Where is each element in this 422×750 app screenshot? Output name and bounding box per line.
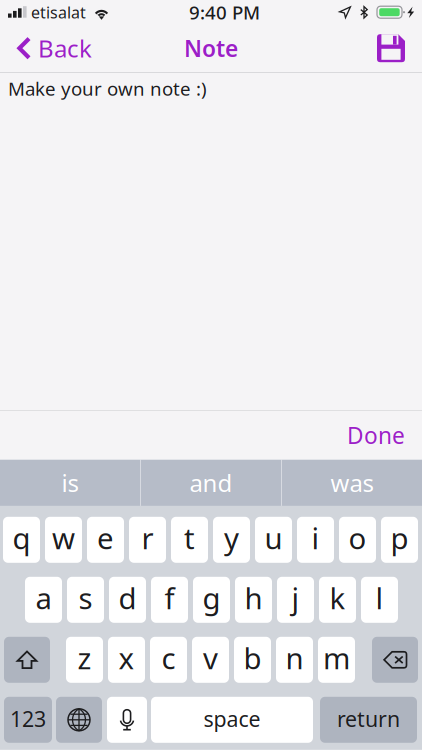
staticText: is [61, 467, 78, 499]
staticText: k [329, 578, 345, 617]
button[interactable]: u [255, 517, 292, 563]
button[interactable]: 123 [4, 697, 52, 743]
button[interactable]: m [318, 637, 355, 683]
staticText: y [224, 518, 239, 557]
staticText: m [323, 638, 350, 677]
button[interactable]: b [234, 637, 271, 683]
staticText: v [203, 638, 218, 677]
staticText: s [78, 578, 92, 617]
button[interactable]: g [193, 577, 230, 623]
staticText: g [202, 578, 220, 617]
button[interactable]: l [361, 577, 398, 623]
button[interactable]: Shift [4, 637, 50, 683]
button[interactable]: space [151, 697, 313, 743]
button[interactable]: c [150, 637, 187, 683]
button[interactable]: Next keyboard [56, 697, 102, 743]
staticText: Back [38, 32, 92, 64]
staticText: f [164, 578, 174, 617]
staticText: a [35, 578, 51, 617]
button[interactable]: y [213, 517, 250, 563]
button[interactable]: is [0, 460, 140, 506]
staticText: o [348, 518, 366, 557]
staticText: e [97, 518, 114, 557]
staticText: j [291, 578, 299, 617]
button[interactable]: was [282, 460, 422, 506]
staticText: space [203, 705, 260, 733]
staticText: Done [347, 420, 405, 450]
button[interactable]: i [297, 517, 334, 563]
staticText: d [118, 578, 136, 617]
button[interactable]: r [129, 517, 166, 563]
staticText: r [141, 518, 153, 557]
staticText: Make your own note :) [8, 76, 207, 101]
staticText: 9:40 PM [189, 0, 260, 25]
staticText: u [264, 518, 282, 557]
button[interactable]: Back [0, 24, 102, 72]
button[interactable]: n [276, 637, 313, 683]
button[interactable]: d [109, 577, 146, 623]
staticText: return [337, 705, 400, 733]
staticText: w [52, 518, 75, 557]
button[interactable]: Dictation [107, 697, 147, 743]
button[interactable]: Save [367, 24, 422, 72]
button[interactable]: f [151, 577, 188, 623]
button[interactable]: v [192, 637, 229, 683]
button[interactable]: j [277, 577, 314, 623]
staticText: and [189, 467, 232, 499]
staticText: p [390, 518, 408, 557]
button[interactable]: x [108, 637, 145, 683]
button[interactable]: return [320, 697, 417, 743]
staticText: q [12, 518, 30, 557]
button[interactable]: Delete [372, 637, 418, 683]
staticText: c [161, 638, 175, 677]
staticText: 123 [10, 705, 46, 733]
staticText: n [285, 638, 303, 677]
button[interactable]: e [87, 517, 124, 563]
staticText: i [311, 518, 319, 557]
button[interactable]: and [141, 460, 281, 506]
staticText: l [375, 578, 383, 617]
button[interactable]: s [67, 577, 104, 623]
button[interactable]: z [66, 637, 103, 683]
button[interactable]: w [45, 517, 82, 563]
button[interactable]: q [3, 517, 40, 563]
button[interactable]: h [235, 577, 272, 623]
button[interactable]: k [319, 577, 356, 623]
staticText: etisalat [31, 2, 86, 23]
staticText: b [243, 638, 261, 677]
staticText: t [184, 518, 195, 557]
staticText: x [118, 638, 134, 677]
button[interactable]: a [25, 577, 62, 623]
button[interactable]: Done [331, 411, 422, 460]
staticText: was [330, 467, 373, 499]
button[interactable]: o [339, 517, 376, 563]
button[interactable]: t [171, 517, 208, 563]
staticText: z [77, 638, 91, 677]
staticText: Note [184, 33, 238, 63]
button[interactable]: p [381, 517, 418, 563]
staticText: h [244, 578, 262, 617]
